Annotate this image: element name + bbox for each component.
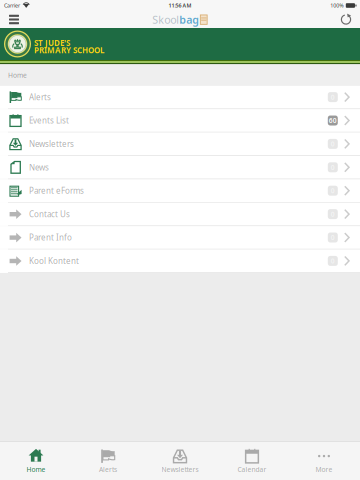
staticText: Home bbox=[8, 71, 27, 79]
staticText: 0 bbox=[331, 139, 335, 148]
button[interactable]: Alerts bbox=[0, 86, 360, 108]
staticText: bag bbox=[179, 12, 199, 27]
button[interactable]: Refresh bbox=[332, 11, 360, 28]
staticText: 0 bbox=[331, 163, 335, 172]
staticText: Kool Kontent bbox=[29, 256, 79, 266]
staticText: Newsletters bbox=[161, 465, 198, 474]
staticText: Home bbox=[26, 465, 45, 474]
staticText: Contact Us bbox=[29, 209, 70, 219]
staticText: Newsletters bbox=[29, 139, 74, 149]
staticText: News bbox=[29, 162, 49, 173]
button[interactable]: Calendar bbox=[216, 442, 288, 480]
button[interactable]: Events List bbox=[0, 109, 360, 132]
staticText: 0 bbox=[331, 210, 335, 219]
button[interactable]: Contact Us bbox=[0, 203, 360, 225]
staticText: Parent Info bbox=[29, 232, 72, 243]
staticText: Alerts bbox=[29, 92, 51, 102]
staticText: Calendar bbox=[237, 465, 266, 474]
button[interactable]: Parent Info bbox=[0, 226, 360, 249]
staticText: 0 bbox=[331, 93, 335, 102]
button[interactable]: Newsletters bbox=[0, 133, 360, 155]
button[interactable]: Home bbox=[0, 442, 72, 480]
staticText: Skool bbox=[152, 12, 179, 27]
staticText: Events List bbox=[29, 115, 69, 126]
staticText: 0 bbox=[331, 256, 335, 265]
button[interactable]: Kool Kontent bbox=[0, 250, 360, 272]
staticText: More bbox=[315, 465, 332, 474]
staticText: PRIMARY SCHOOL bbox=[34, 45, 104, 55]
staticText: 0 bbox=[331, 233, 335, 242]
button[interactable]: Alerts bbox=[72, 442, 144, 480]
staticText: 0 bbox=[331, 186, 335, 195]
button[interactable]: Menu bbox=[0, 11, 28, 28]
staticText: Alerts bbox=[99, 465, 117, 474]
staticText: 60 bbox=[329, 116, 337, 125]
button[interactable]: News bbox=[0, 156, 360, 179]
staticText: Carrier bbox=[4, 2, 20, 9]
staticText: 100% bbox=[330, 2, 343, 9]
button[interactable]: More bbox=[288, 442, 360, 480]
button[interactable]: Parent eForms bbox=[0, 179, 360, 202]
staticText: 11:56 AM bbox=[168, 2, 191, 9]
staticText: ST JUDE'S bbox=[34, 38, 70, 48]
staticText: Parent eForms bbox=[29, 185, 84, 196]
button[interactable]: Newsletters bbox=[144, 442, 216, 480]
